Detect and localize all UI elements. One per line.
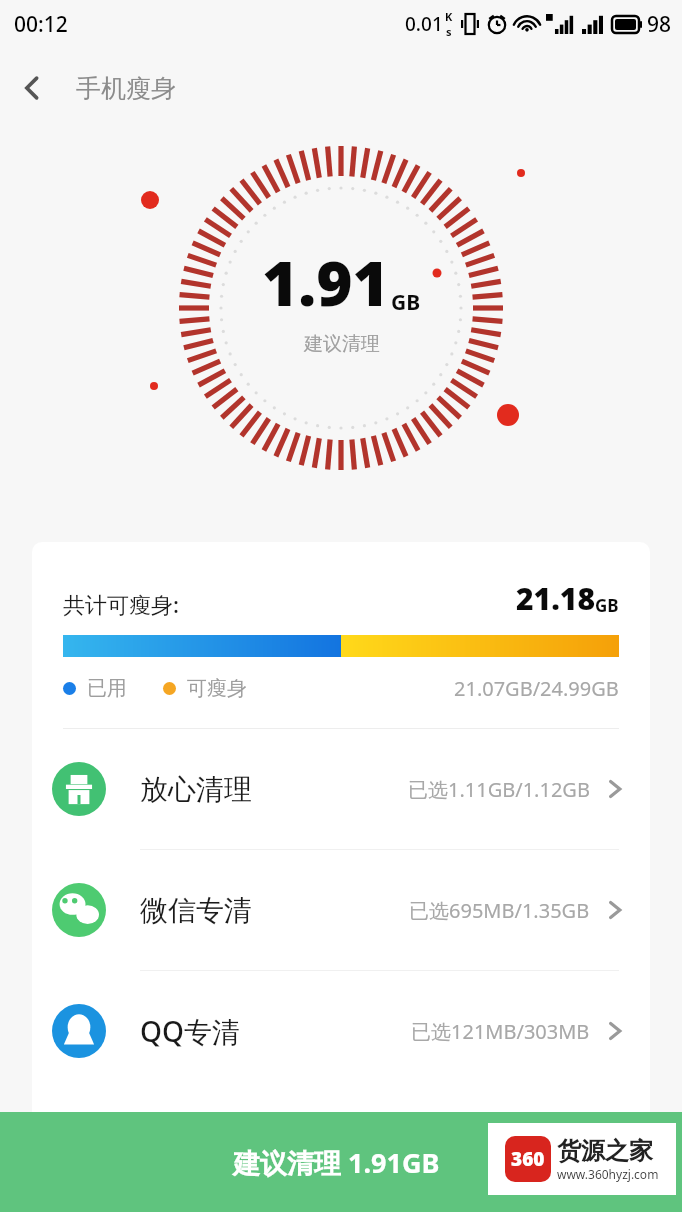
staticText: 可瘦身 — [187, 676, 247, 701]
staticText: 0.01 — [405, 11, 443, 37]
staticText: 已用 — [87, 676, 127, 701]
staticText: K — [445, 9, 453, 24]
button[interactable]: 放心清理 — [32, 729, 650, 849]
staticText: QQ专清 — [140, 1012, 240, 1050]
staticText: 货源之家 — [557, 1136, 653, 1166]
staticText: 1.91 — [262, 240, 389, 324]
staticText: s — [446, 24, 452, 39]
button[interactable]: 建议清理 1.91GB — [0, 1112, 682, 1212]
staticText: 21.18 — [516, 578, 595, 619]
staticText: 21.07GB/24.99GB — [454, 675, 619, 702]
staticText: 放心清理 — [140, 772, 252, 807]
staticText: 建议清理 1.91GB — [233, 1144, 440, 1181]
staticText: 00:12 — [14, 10, 68, 39]
staticText: 98 — [647, 10, 672, 39]
staticText: www.360hyzj.com — [557, 1166, 659, 1182]
staticText: 微信专清 — [140, 893, 252, 928]
staticText: 共计可瘦身: — [63, 589, 179, 619]
staticText: 已选695MB/1.35GB — [409, 897, 590, 924]
button[interactable]: Back — [0, 56, 64, 120]
staticText: 手机瘦身 — [76, 73, 176, 104]
staticText: 建议清理 — [304, 332, 380, 356]
button[interactable]: 微信专清 — [32, 850, 650, 970]
staticText: GB — [391, 288, 421, 317]
staticText: 已选121MB/303MB — [411, 1018, 590, 1045]
button[interactable]: QQ专清 — [32, 971, 650, 1091]
staticText: 已选1.11GB/1.12GB — [408, 776, 590, 803]
staticText: GB — [595, 594, 619, 617]
staticText: 360 — [511, 1146, 545, 1172]
